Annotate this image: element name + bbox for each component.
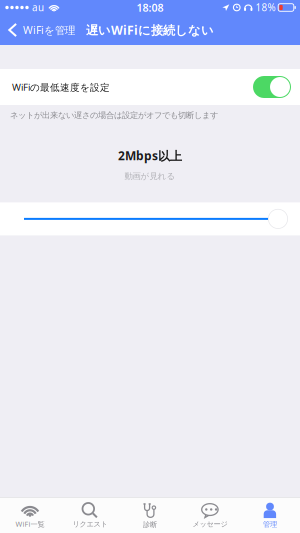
staticText: WiFi一覧 — [15, 519, 44, 529]
staticText: 18:08 — [136, 0, 163, 15]
staticText: 遅いWiFiに接続しない — [86, 22, 214, 38]
button[interactable]: 診断 — [120, 498, 180, 532]
button[interactable]: WiFiの最低速度を設定 — [253, 76, 291, 98]
button[interactable]: WiFi一覧 — [0, 499, 60, 532]
button[interactable]: 最低速度スライダー — [0, 202, 300, 235]
staticText: 動画が見れる — [124, 171, 175, 181]
staticText: 診断 — [143, 520, 157, 529]
staticText: リクエスト — [72, 519, 107, 529]
staticText: 管理 — [263, 520, 277, 529]
staticText: au — [32, 1, 44, 14]
staticText: メッセージ — [192, 519, 227, 529]
staticText: WiFiの最低速度を設定 — [12, 80, 110, 93]
staticText: WiFiを管理 — [23, 23, 75, 37]
button[interactable]: 管理 — [240, 499, 300, 532]
button[interactable]: リクエスト — [60, 499, 120, 532]
staticText: 18% — [255, 1, 275, 14]
staticText: 2Mbps以上 — [118, 147, 182, 164]
button[interactable]: WiFiの最低速度を設定 — [0, 69, 300, 105]
button[interactable]: メッセージ — [180, 499, 240, 532]
staticText: ネットが出来ない遅さの場合は設定がオフでも切断します — [10, 110, 218, 120]
button[interactable]: WiFiを管理 — [0, 18, 75, 42]
